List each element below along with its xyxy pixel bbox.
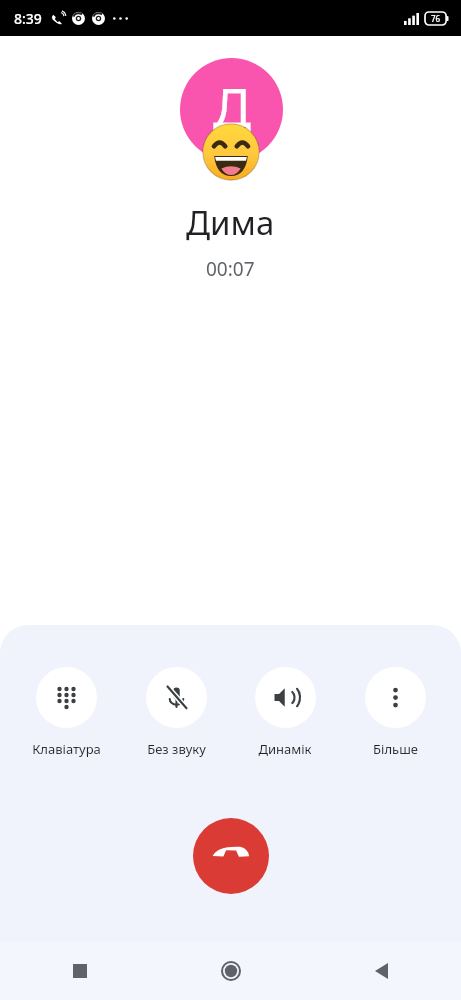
button[interactable]: Speaker [233, 665, 337, 760]
button[interactable]: More options [343, 665, 447, 760]
button[interactable]: Mute [124, 665, 228, 760]
staticText: Клавіатура [32, 740, 101, 758]
button[interactable]: Back [357, 947, 405, 995]
staticText: Д [213, 71, 251, 142]
staticText: 8:39 [14, 9, 42, 28]
staticText: 00:07 [206, 256, 255, 282]
button[interactable]: Home [207, 947, 255, 995]
staticText: Динамік [258, 740, 312, 758]
staticText: Без звуку [147, 740, 206, 758]
button[interactable]: End call [193, 818, 269, 894]
staticText: Дима [186, 200, 275, 245]
button[interactable]: Recents [56, 947, 104, 995]
button[interactable]: Dialpad [14, 665, 118, 760]
staticText: Більше [373, 740, 418, 758]
staticText: 76 [431, 13, 441, 24]
